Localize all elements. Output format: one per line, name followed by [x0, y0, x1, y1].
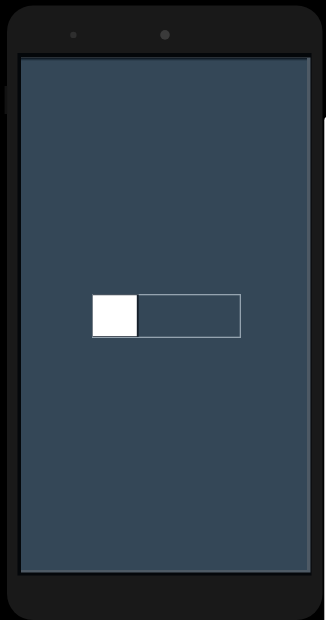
button[interactable]: Progress: [92, 294, 241, 338]
